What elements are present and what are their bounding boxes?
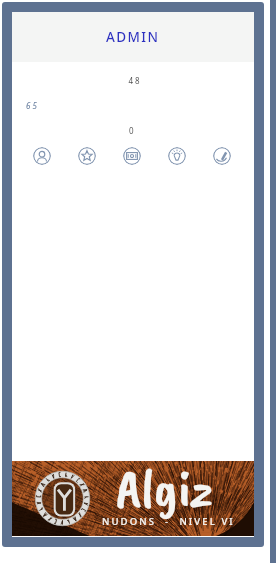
button[interactable]: Algiz banner: [12, 461, 254, 536]
button[interactable]: Favourites: [78, 147, 96, 165]
staticText: NUDONS - NIVEL VI: [102, 515, 235, 528]
button[interactable]: Ideas: [168, 147, 186, 165]
staticText: 4 8: [128, 75, 140, 86]
staticText: 0: [129, 125, 134, 136]
button[interactable]: ADMIN: [12, 12, 254, 62]
staticText: 6 5: [26, 100, 37, 111]
button[interactable]: Account: [33, 147, 51, 165]
button[interactable]: Edit: [213, 147, 231, 165]
staticText: Algiz: [116, 454, 214, 522]
staticText: ADMIN: [106, 28, 160, 46]
button[interactable]: Payments: [123, 147, 141, 165]
